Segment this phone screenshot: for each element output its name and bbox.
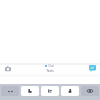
staticText: Texts xyxy=(46,69,54,73)
button[interactable]: Language options xyxy=(1,86,19,96)
button[interactable]: Stickers xyxy=(21,86,39,96)
button[interactable]: Chat xyxy=(16,65,84,74)
button[interactable]: Send xyxy=(84,65,100,74)
button[interactable]: Emoji xyxy=(61,86,79,96)
staticText: Chat xyxy=(48,64,54,68)
button[interactable]: Camera xyxy=(0,65,16,74)
button[interactable]: Preview xyxy=(81,86,99,96)
button[interactable]: GIF xyxy=(41,86,59,96)
